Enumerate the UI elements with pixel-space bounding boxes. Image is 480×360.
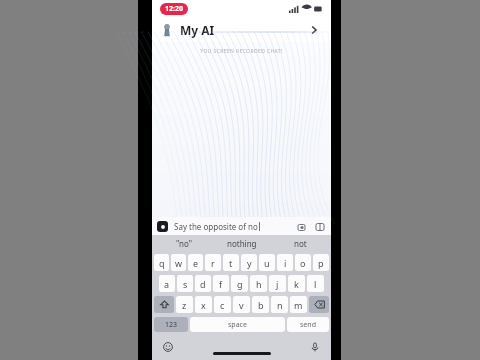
button[interactable]: t xyxy=(223,254,239,271)
button[interactable]: i xyxy=(277,254,293,271)
button[interactable]: not xyxy=(271,235,329,252)
staticText: g xyxy=(237,278,243,290)
button[interactable]: l xyxy=(307,275,324,292)
button[interactable]: m xyxy=(290,296,307,313)
button[interactable]: send xyxy=(287,317,329,332)
staticText: s xyxy=(183,278,188,290)
button[interactable]: Emoji xyxy=(162,341,174,353)
staticText: y xyxy=(247,257,252,269)
staticText: space xyxy=(228,320,247,330)
button[interactable]: p xyxy=(313,254,329,271)
staticText: l xyxy=(314,278,317,290)
staticText: a xyxy=(164,278,170,290)
staticText: send xyxy=(300,320,316,330)
staticText: c xyxy=(220,299,225,311)
staticText: o xyxy=(300,257,306,269)
button[interactable]: space xyxy=(190,317,285,332)
staticText: b xyxy=(258,299,264,311)
button[interactable]: z xyxy=(176,296,193,313)
staticText: "no" xyxy=(176,238,192,249)
staticText: YOU SCREEN RECORDED CHAT! xyxy=(200,48,283,55)
button[interactable]: u xyxy=(259,254,275,271)
staticText: j xyxy=(276,278,279,290)
staticText: q xyxy=(159,257,165,269)
staticText: 12:20 xyxy=(165,4,183,14)
button[interactable]: h xyxy=(250,275,267,292)
staticText: e xyxy=(193,257,199,269)
button[interactable]: a xyxy=(159,275,175,292)
staticText: not xyxy=(294,238,307,249)
staticText: w xyxy=(175,257,183,269)
staticText: r xyxy=(211,257,215,269)
button[interactable]: My AI xyxy=(152,18,331,42)
staticText: x xyxy=(201,299,206,311)
button[interactable]: k xyxy=(288,275,305,292)
staticText: n xyxy=(277,299,283,311)
button[interactable]: o xyxy=(295,254,311,271)
button[interactable]: "no" xyxy=(154,235,213,252)
button[interactable]: Open chat xyxy=(305,21,323,39)
button[interactable]: x xyxy=(195,296,212,313)
staticText: z xyxy=(182,299,187,311)
button[interactable]: w xyxy=(171,254,186,271)
button[interactable]: shift xyxy=(154,296,174,313)
staticText: u xyxy=(264,257,270,269)
staticText: t xyxy=(229,257,233,269)
button[interactable]: Stickers xyxy=(295,220,308,233)
button[interactable]: Backspace xyxy=(309,296,329,313)
button[interactable]: 123 xyxy=(154,317,188,332)
button[interactable]: f xyxy=(213,275,229,292)
button[interactable]: d xyxy=(195,275,211,292)
staticText: p xyxy=(318,257,324,269)
staticText: v xyxy=(239,299,244,311)
button[interactable]: r xyxy=(205,254,221,271)
button[interactable]: g xyxy=(231,275,248,292)
staticText: d xyxy=(200,278,206,290)
staticText: h xyxy=(256,278,262,290)
staticText: 123 xyxy=(165,320,178,330)
button[interactable]: Say the opposite of no xyxy=(174,221,295,232)
staticText: nothing xyxy=(227,238,257,249)
button[interactable]: Voice input xyxy=(309,341,321,353)
staticText: k xyxy=(294,278,299,290)
button[interactable]: Camera xyxy=(157,221,168,232)
button[interactable]: s xyxy=(177,275,193,292)
button[interactable]: y xyxy=(241,254,257,271)
button[interactable]: Attach xyxy=(313,220,326,233)
staticText: Say the opposite of no xyxy=(174,221,258,232)
button[interactable]: nothing xyxy=(213,235,271,252)
button[interactable]: b xyxy=(252,296,269,313)
button[interactable]: j xyxy=(269,275,286,292)
staticText: m xyxy=(294,299,303,311)
button[interactable]: v xyxy=(233,296,250,313)
staticText: f xyxy=(219,278,223,290)
button[interactable]: c xyxy=(214,296,231,313)
staticText: My AI xyxy=(180,22,215,38)
button[interactable]: e xyxy=(188,254,203,271)
button[interactable]: n xyxy=(271,296,288,313)
button[interactable]: q xyxy=(154,254,169,271)
staticText: i xyxy=(284,257,287,269)
